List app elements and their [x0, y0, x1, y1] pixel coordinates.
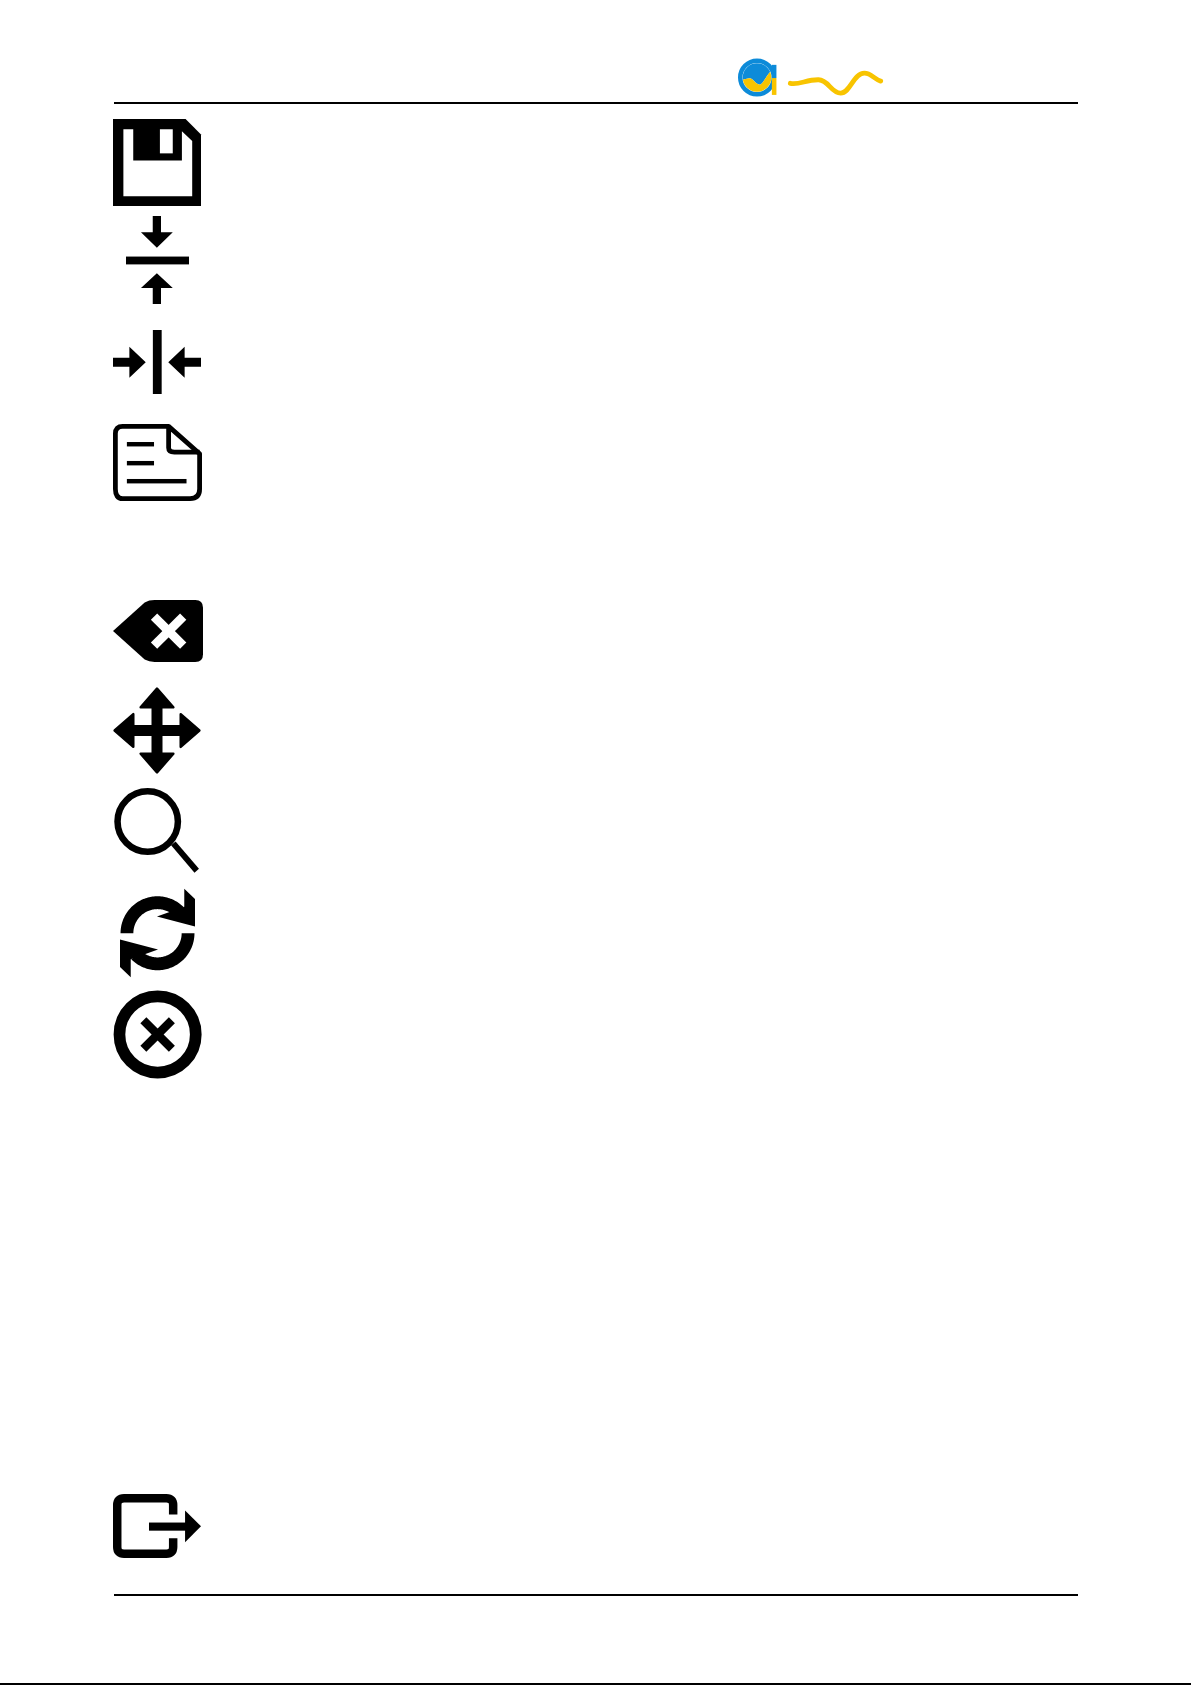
button[interactable]: Collapse vertically	[126, 216, 189, 304]
button[interactable]: Save	[113, 119, 201, 206]
button[interactable]: Refresh	[120, 889, 195, 977]
button[interactable]: Backspace	[113, 600, 203, 662]
button[interactable]: Cancel	[113, 990, 201, 1078]
button[interactable]: Document	[113, 424, 202, 501]
button[interactable]: Log out	[113, 1494, 201, 1558]
other: Brand logo	[739, 56, 882, 99]
button[interactable]: Search	[114, 788, 200, 874]
button[interactable]: Move	[113, 687, 201, 774]
button[interactable]: Collapse horizontally	[113, 330, 201, 394]
